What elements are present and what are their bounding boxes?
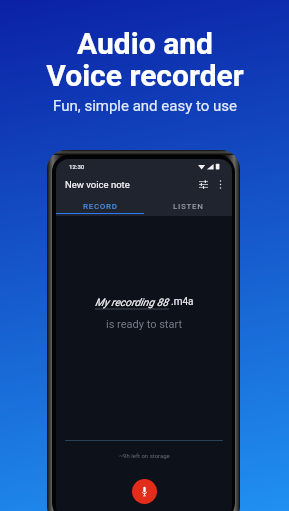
staticText: LISTEN bbox=[173, 202, 204, 211]
staticText: ~9h left on storage bbox=[119, 452, 170, 459]
staticText: New voice note bbox=[65, 179, 130, 190]
staticText: My recording 88 bbox=[95, 296, 169, 308]
button[interactable]: LISTEN bbox=[144, 198, 232, 215]
staticText: Fun, simple and easy to use bbox=[53, 97, 237, 115]
button[interactable]: RECORD bbox=[56, 198, 144, 215]
staticText: .m4a bbox=[169, 296, 194, 308]
staticText: RECORD bbox=[83, 202, 118, 211]
staticText: Voice recorder bbox=[46, 58, 244, 93]
button[interactable]: Audio settings bbox=[195, 176, 212, 193]
button[interactable]: Start recording bbox=[132, 479, 157, 504]
button[interactable]: More options bbox=[212, 176, 229, 193]
staticText: Audio and bbox=[77, 26, 213, 61]
staticText: 12:30 bbox=[69, 163, 85, 170]
button[interactable]: New voice note bbox=[65, 179, 130, 190]
staticText: is ready to start bbox=[106, 318, 183, 331]
